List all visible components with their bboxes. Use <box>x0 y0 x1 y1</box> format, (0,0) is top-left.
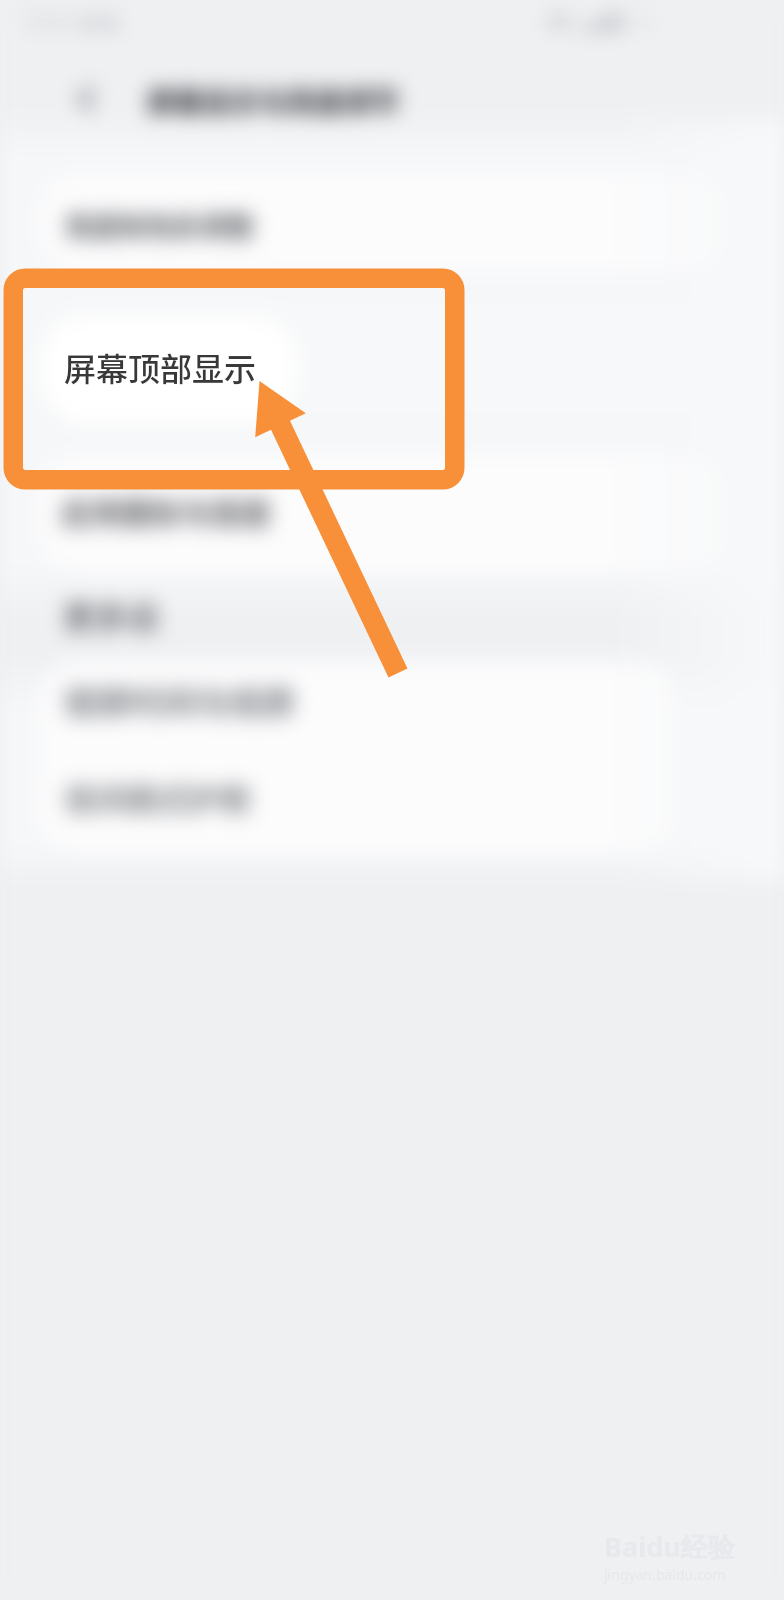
other: Highlight annotation <box>0 0 784 1600</box>
staticText: 夜间模式护眼 <box>64 775 250 820</box>
button[interactable]: 屏幕顶部显示 <box>64 344 257 390</box>
staticText: 亮度和色彩调整 <box>65 206 254 245</box>
staticText: 锁屏时间与熄屏 <box>64 677 295 725</box>
staticText: ▮▮ ▂▄▆ ▭ <box>548 6 651 32</box>
staticText: Baidu经验 <box>604 1528 735 1565</box>
staticText: 应用图标与弧度 <box>61 489 271 532</box>
staticText: 屏幕显示与亮度调节 <box>147 81 400 122</box>
staticText: 更多设 <box>63 592 160 638</box>
